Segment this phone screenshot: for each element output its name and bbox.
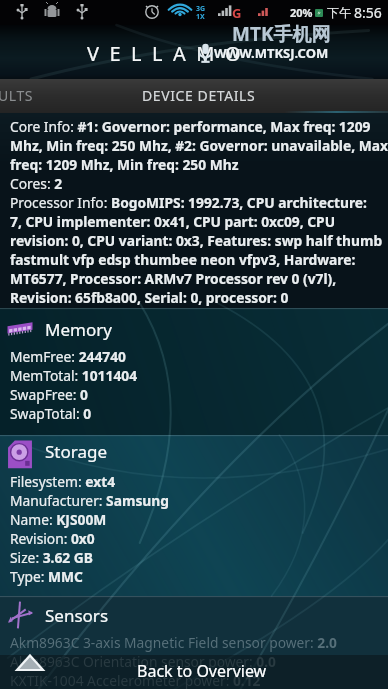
staticText: Filesystem: ext4 xyxy=(10,472,116,491)
staticText: Memory xyxy=(45,318,112,341)
button[interactable]: Scroll up xyxy=(0,655,388,689)
staticText: fastmult vfp edsp thumbee neon vfpv3, Ha… xyxy=(10,250,356,269)
staticText: Sensors xyxy=(45,604,109,627)
staticText: MT6577, Processor: ARMv7 Processor rev 0… xyxy=(10,269,337,288)
button[interactable]: ULTS xyxy=(0,79,85,113)
staticText: Name: KJS00M xyxy=(10,510,107,529)
staticText: 下午 xyxy=(327,5,351,20)
staticText: KXTIK-1004 Accelerometer power: 0.12 xyxy=(10,671,261,689)
staticText: MemTotal: 1011404 xyxy=(10,366,138,385)
staticText: Mhz, Min freq: 250 Mhz, #2: Governor: un… xyxy=(10,136,388,155)
staticText: SwapTotal: 0 xyxy=(10,404,92,423)
staticText: Revision: 0x0 xyxy=(10,529,95,548)
staticText: revision: 0, CPU variant: 0x3, Features:… xyxy=(10,231,383,250)
staticText: MemFree: 244740 xyxy=(10,347,126,366)
other: Scroll up xyxy=(16,654,44,672)
staticText: Manufacturer: Samsung xyxy=(10,491,170,510)
staticText: G xyxy=(232,4,242,22)
staticText: 20% xyxy=(290,5,313,20)
staticText: Revision: 65fb8a00, Serial: 0, processor… xyxy=(10,288,289,307)
staticText: Size: 3.62 GB xyxy=(10,548,93,567)
staticText: Akm8963C Orientation sensor power: 0.0 xyxy=(10,652,277,671)
staticText: Processor Info: BogoMIPS: 1992.73, CPU a… xyxy=(10,193,367,212)
staticText: VELLAMO xyxy=(87,40,252,67)
staticText: Core Info: #1: Governor: performance, Ma… xyxy=(10,117,371,136)
staticText: 3G 1X xyxy=(196,4,206,21)
staticText: 7, CPU implementer: 0x41, CPU part: 0xc0… xyxy=(10,212,336,231)
staticText: ULTS xyxy=(0,86,34,105)
staticText: freq: 1209 Mhz, Min freq: 250 Mhz xyxy=(10,155,239,174)
staticText: Cores: 2 xyxy=(10,174,63,193)
staticText: DEVICE DETAILS xyxy=(142,86,256,105)
staticText: WWW.MTKSJ.COM xyxy=(214,44,329,62)
staticText: Akm8963C 3-axis Magnetic Field sensor po… xyxy=(10,633,337,652)
staticText: 8:56 xyxy=(354,3,382,22)
staticText: Back to Overview xyxy=(137,660,267,682)
staticText: Type: MMC xyxy=(10,567,83,586)
staticText: MTK手机网 xyxy=(232,21,331,47)
staticText: Storage xyxy=(45,440,108,463)
staticText: SwapFree: 0 xyxy=(10,385,88,404)
button[interactable]: DEVICE DETAILS xyxy=(85,79,313,113)
